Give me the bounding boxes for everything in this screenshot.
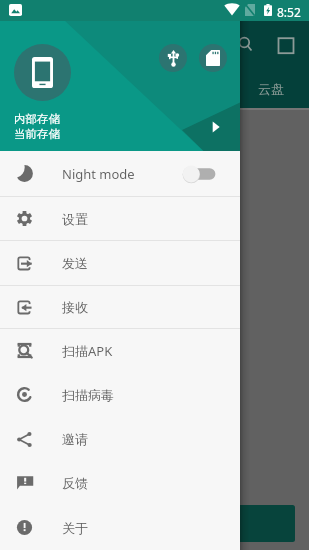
- button[interactable]: 扫描病毒: [0, 372, 240, 417]
- button[interactable]: Internal storage: [14, 44, 71, 101]
- button[interactable]: Expand: [210, 119, 224, 135]
- staticText: 当前存储: [14, 127, 60, 141]
- staticText: 设置: [62, 211, 88, 227]
- staticText: 扫描病毒: [62, 387, 114, 403]
- staticText: 8:52: [277, 4, 301, 20]
- button[interactable]: Night mode: [0, 151, 240, 196]
- staticText: 云盘: [258, 81, 284, 97]
- staticText: 反馈: [62, 475, 88, 491]
- button[interactable]: SD card: [199, 44, 227, 72]
- staticText: 扫描APK: [62, 342, 113, 360]
- button[interactable]: Search: [236, 32, 258, 54]
- button[interactable]: 设置: [0, 197, 240, 240]
- staticText: 邀请: [62, 431, 88, 447]
- staticText: 接收: [62, 299, 88, 315]
- staticText: 发送: [62, 255, 88, 271]
- button[interactable]: 扫描APK: [0, 329, 240, 372]
- button[interactable]: Stop: [276, 36, 294, 54]
- button[interactable]: 邀请: [0, 417, 240, 461]
- button[interactable]: [228, 505, 295, 542]
- button[interactable]: 发送: [0, 241, 240, 285]
- button[interactable]: 反馈: [0, 461, 240, 505]
- button[interactable]: Night mode toggle: [184, 159, 240, 189]
- staticText: Night mode: [62, 165, 135, 183]
- staticText: 关于: [62, 520, 88, 536]
- staticText: 内部存储: [14, 112, 60, 126]
- button[interactable]: USB storage: [159, 44, 187, 72]
- button[interactable]: 接收: [0, 286, 240, 328]
- button[interactable]: 关于: [0, 505, 240, 550]
